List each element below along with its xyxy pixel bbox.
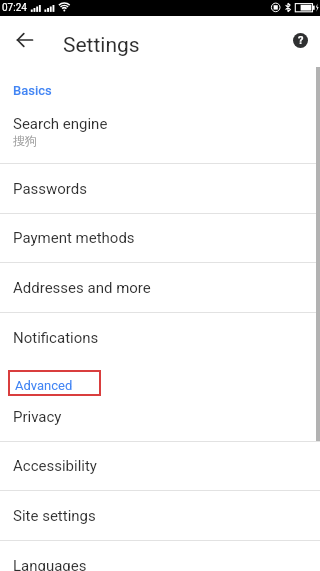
- button[interactable]: Advanced: [8, 370, 101, 396]
- button[interactable]: Accessibility: [0, 442, 320, 490]
- button[interactable]: Payment methods: [0, 214, 320, 262]
- staticText: Basics: [13, 83, 52, 98]
- staticText: ?: [298, 34, 304, 47]
- button[interactable]: Privacy: [0, 392, 320, 441]
- button[interactable]: Notifications: [0, 313, 320, 362]
- button[interactable]: Help: [283, 23, 318, 58]
- staticText: Languages: [13, 557, 87, 571]
- staticText: Search engine: [13, 115, 108, 133]
- staticText: Site settings: [13, 507, 96, 525]
- staticText: Settings: [63, 33, 140, 58]
- button[interactable]: Languages: [0, 541, 320, 571]
- staticText: 搜狗: [13, 133, 37, 148]
- staticText: Accessibility: [13, 457, 97, 475]
- staticText: Notifications: [13, 329, 99, 347]
- staticText: 07:24: [2, 2, 27, 14]
- button[interactable]: Back: [7, 22, 43, 58]
- button[interactable]: Addresses and more: [0, 263, 320, 312]
- staticText: Passwords: [13, 180, 87, 198]
- staticText: Privacy: [13, 408, 62, 426]
- button[interactable]: Site settings: [0, 491, 320, 540]
- button[interactable]: Passwords: [0, 164, 320, 213]
- button[interactable]: Search engine: [0, 105, 320, 163]
- staticText: Advanced: [15, 378, 73, 393]
- staticText: Addresses and more: [13, 279, 151, 297]
- staticText: Payment methods: [13, 229, 135, 247]
